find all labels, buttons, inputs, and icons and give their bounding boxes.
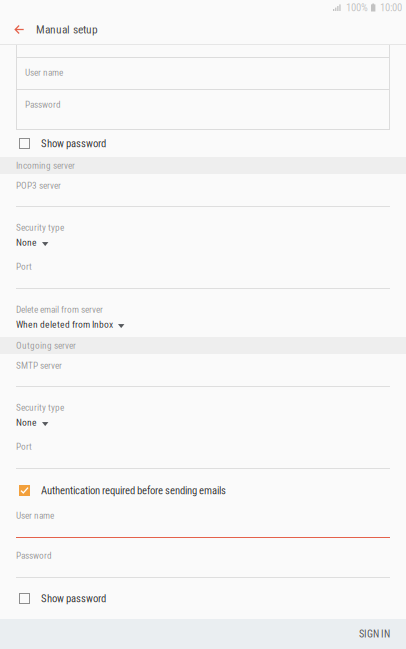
staticText: 100%: [346, 1, 368, 14]
button[interactable]: Delete email from server: [0, 289, 406, 337]
staticText: When deleted from Inbox: [16, 319, 113, 330]
staticText: Password: [25, 99, 61, 110]
button[interactable]: Back: [8, 15, 31, 44]
staticText: SIGN IN: [359, 628, 390, 640]
button[interactable]: SIGN IN: [359, 619, 406, 649]
staticText: Incoming server: [16, 160, 75, 171]
staticText: User name: [16, 510, 54, 521]
staticText: Authentication required before sending e…: [41, 484, 226, 497]
staticText: None: [16, 417, 37, 428]
staticText: 10:00: [380, 1, 402, 14]
staticText: Port: [16, 261, 32, 272]
staticText: Port: [16, 441, 32, 452]
button[interactable]: Show password: [0, 130, 406, 157]
staticText: POP3 server: [16, 180, 61, 191]
button[interactable]: Authentication required before sending e…: [0, 469, 406, 512]
button[interactable]: Security type: [0, 387, 406, 428]
staticText: Manual setup: [36, 23, 98, 36]
staticText: Security type: [16, 402, 64, 413]
staticText: SMTP server: [16, 360, 62, 371]
staticText: Security type: [16, 222, 64, 233]
staticText: None: [16, 237, 37, 248]
staticText: Outgoing server: [16, 340, 76, 351]
staticText: Password: [16, 550, 52, 561]
button[interactable]: Show password: [0, 578, 406, 619]
button[interactable]: Security type: [0, 207, 406, 248]
staticText: Show password: [41, 592, 106, 605]
staticText: User name: [25, 67, 63, 78]
staticText: Delete email from server: [16, 304, 103, 315]
staticText: Show password: [41, 137, 106, 150]
